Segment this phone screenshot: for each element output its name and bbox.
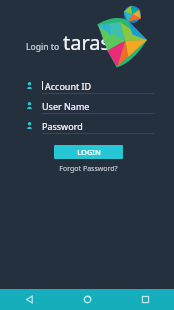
button[interactable]: Back — [0, 289, 58, 310]
button[interactable]: Home — [58, 289, 116, 310]
button[interactable]: LOGIN — [54, 145, 123, 159]
button[interactable]: Password — [26, 118, 154, 134]
staticText: User Name — [42, 100, 90, 112]
staticText: Forgot Password? — [59, 164, 118, 174]
button[interactable]: Account ID — [26, 78, 154, 94]
button[interactable]: Forgot Password? — [54, 163, 123, 175]
staticText: Password — [42, 120, 83, 132]
staticText: Account ID — [45, 80, 92, 92]
staticText: LOGIN — [77, 147, 101, 157]
staticText: taras — [63, 29, 111, 56]
button[interactable]: User Name — [26, 98, 154, 114]
button[interactable]: Recent apps — [116, 289, 174, 310]
staticText: Login to — [26, 41, 60, 53]
